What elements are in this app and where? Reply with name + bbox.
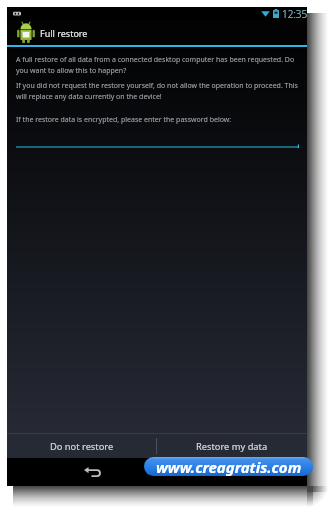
staticText: Restore my data <box>196 440 268 453</box>
staticText: 12:35 <box>282 7 307 20</box>
button[interactable]: Back <box>79 461 105 483</box>
staticText: If the restore data is encrypted, please… <box>16 115 232 125</box>
staticText: A full restore of all data from a connec… <box>16 55 302 75</box>
staticText: If you did not request the restore yours… <box>16 81 302 101</box>
button[interactable]: Restore my data <box>157 434 307 458</box>
staticText: www.creagratis.com <box>156 457 302 476</box>
button[interactable]: Do not restore <box>7 434 156 458</box>
button[interactable] <box>16 143 299 148</box>
staticText: Do not restore <box>50 440 114 453</box>
staticText: Full restore <box>40 27 88 39</box>
